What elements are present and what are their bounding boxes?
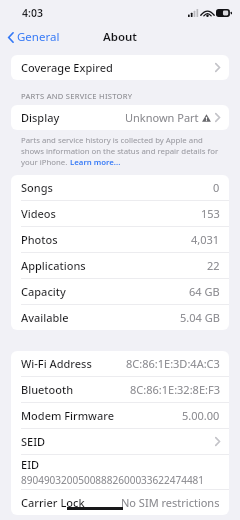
staticText: Wi-Fi Address	[21, 356, 92, 371]
staticText: Parts and service history is collected b…	[21, 135, 203, 146]
staticText: Display	[21, 110, 60, 125]
staticText: Photos	[21, 232, 58, 247]
staticText: Carrier Lock	[21, 495, 85, 510]
staticText: your iPhone.	[21, 157, 70, 168]
staticText: 153	[201, 206, 220, 221]
staticText: Capacity	[21, 284, 66, 299]
button[interactable]: Coverage Expired	[11, 55, 229, 80]
staticText: 4,031	[191, 232, 220, 247]
staticText: 5.00.00	[182, 408, 220, 423]
staticText: Applications	[21, 258, 86, 273]
staticText: 5.04 GB	[180, 310, 220, 325]
button[interactable]: Learn more...	[70, 157, 121, 168]
staticText: No SIM restrictions	[121, 495, 220, 510]
staticText: PARTS AND SERVICE HISTORY	[21, 91, 133, 101]
staticText: Available	[21, 310, 69, 325]
staticText: shows information on the status and repa…	[21, 146, 219, 157]
staticText: 22	[207, 258, 220, 273]
staticText: General	[17, 29, 60, 45]
staticText: About	[103, 29, 138, 45]
staticText: Videos	[21, 206, 56, 221]
staticText: Bluetooth	[21, 382, 74, 397]
staticText: SEID	[21, 434, 46, 449]
button[interactable]: Display	[11, 105, 229, 130]
staticText: Coverage Expired	[21, 60, 113, 75]
button[interactable]: General	[0, 26, 66, 48]
staticText: 8C:86:1E:32:8E:F3	[130, 382, 220, 397]
staticText: EID	[21, 457, 40, 472]
staticText: Unknown Part	[125, 110, 199, 125]
button[interactable]: SEID	[11, 429, 229, 454]
staticText: Modem Firmware	[21, 408, 114, 423]
staticText: 4:03	[22, 6, 43, 20]
staticText: 8C:86:1E:3D:4A:C3	[126, 356, 220, 371]
staticText: 0	[213, 180, 220, 195]
staticText: 89049032005008882600033622474481	[21, 473, 205, 487]
staticText: Songs	[21, 180, 53, 195]
staticText: 64 GB	[189, 284, 220, 299]
